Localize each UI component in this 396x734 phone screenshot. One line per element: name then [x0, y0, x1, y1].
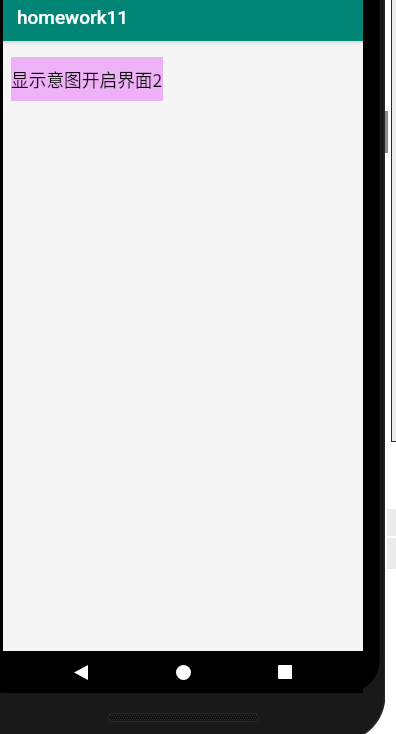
- button[interactable]: Recent apps: [262, 651, 308, 693]
- button[interactable]: 显示意图开启界面2: [11, 57, 163, 101]
- button[interactable]: Home: [160, 651, 206, 693]
- button[interactable]: Back: [58, 651, 104, 693]
- staticText: homework11: [17, 6, 129, 28]
- staticText: 显示意图开启界面2: [11, 66, 163, 92]
